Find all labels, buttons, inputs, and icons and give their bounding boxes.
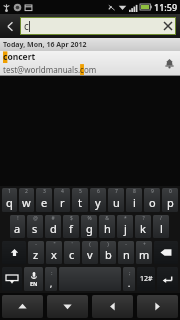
button[interactable]: Shift — [2, 241, 26, 264]
button[interactable]: " — [46, 241, 62, 264]
button[interactable]: Right — [137, 295, 178, 318]
button[interactable]: Down — [47, 295, 88, 318]
button[interactable]: 12# — [137, 267, 155, 291]
button[interactable]: Keyboard — [2, 267, 22, 291]
staticText: a — [14, 221, 21, 236]
button[interactable]: Enter — [157, 267, 178, 291]
staticText: . — [128, 278, 131, 289]
button[interactable]: 5 — [72, 188, 88, 212]
button[interactable]: ! — [10, 215, 25, 238]
button[interactable]: @ — [27, 215, 43, 238]
staticText: c — [24, 19, 29, 33]
staticText: t — [78, 195, 82, 210]
staticText: w — [22, 195, 31, 210]
staticText: 7 — [115, 188, 118, 195]
button[interactable]: Voice input — [24, 267, 43, 291]
staticText: " — [53, 241, 56, 248]
staticText: s — [32, 221, 38, 236]
button[interactable]: 7 — [108, 188, 124, 212]
button[interactable]: ' — [64, 241, 80, 264]
staticText: h — [104, 221, 111, 236]
button[interactable]: + — [136, 241, 152, 264]
staticText: e — [41, 195, 48, 210]
button[interactable]: 4 — [54, 188, 70, 212]
staticText: - — [125, 241, 127, 248]
button[interactable]: % — [81, 215, 97, 238]
staticText: $ — [70, 215, 73, 222]
staticText: 9 — [151, 188, 154, 195]
staticText: j — [124, 221, 127, 236]
staticText: ( — [89, 241, 91, 248]
staticText: m — [139, 247, 150, 262]
staticText: n — [123, 247, 130, 262]
button[interactable]: 8 — [126, 188, 142, 212]
staticText: 12# — [140, 274, 153, 284]
button[interactable]: ? — [135, 215, 151, 238]
button[interactable]: $ — [63, 215, 79, 238]
staticText: 8 — [133, 188, 136, 195]
staticText: 1 — [8, 188, 11, 195]
staticText: 6 — [97, 188, 100, 195]
button[interactable]: 1 — [2, 188, 17, 212]
staticText: - — [35, 241, 37, 248]
staticText: ' — [71, 241, 73, 248]
staticText: q — [6, 195, 13, 210]
staticText: * — [124, 215, 127, 222]
button[interactable]: 0 — [162, 188, 178, 212]
staticText: Today, Mon, 16 Apr 2012 — [3, 40, 87, 50]
button[interactable]: concert — [0, 51, 180, 75]
staticText: g — [86, 221, 93, 236]
button[interactable]: 3 — [36, 188, 52, 212]
button[interactable]: - — [28, 241, 44, 264]
button[interactable]: - — [118, 241, 134, 264]
button[interactable]: / — [153, 215, 169, 238]
button[interactable]: Comma — [45, 267, 57, 291]
staticText: r — [60, 195, 65, 210]
staticText: % — [87, 215, 92, 222]
button[interactable]: ( — [82, 241, 98, 264]
staticText: o — [149, 195, 156, 210]
button[interactable]: Backspace — [154, 241, 178, 264]
staticText: / — [160, 215, 162, 222]
button[interactable]: ) — [100, 241, 116, 264]
button[interactable]: & — [99, 215, 115, 238]
staticText: concert — [3, 51, 36, 63]
staticText: z — [33, 247, 39, 262]
staticText: EN — [30, 280, 38, 287]
button[interactable]: # — [45, 215, 61, 238]
staticText: x — [51, 247, 57, 262]
staticText: i — [133, 195, 136, 210]
staticText: : — [51, 269, 53, 277]
button[interactable]: Back — [0, 14, 20, 38]
staticText: u — [113, 195, 120, 210]
staticText: b — [105, 247, 112, 262]
staticText: & — [105, 215, 109, 222]
button[interactable]: Period — [123, 267, 135, 291]
button[interactable]: Reminder — [158, 51, 180, 75]
staticText: y — [95, 195, 101, 210]
button[interactable]: 9 — [144, 188, 160, 212]
button[interactable]: 6 — [90, 188, 106, 212]
staticText: v — [87, 247, 93, 262]
button[interactable]: Clear — [160, 17, 176, 35]
button[interactable] — [59, 267, 121, 291]
staticText: 11:59 — [154, 1, 178, 13]
staticText: ? — [142, 215, 145, 222]
staticText: l — [160, 221, 163, 236]
staticText: p — [167, 195, 174, 210]
staticText: f — [69, 221, 73, 236]
button[interactable]: Up — [2, 295, 43, 318]
staticText: # — [51, 215, 55, 222]
staticText: ; — [129, 269, 131, 277]
button[interactable]: c — [20, 17, 176, 35]
staticText: ! — [17, 215, 19, 222]
staticText: k — [140, 221, 146, 236]
button[interactable]: Left — [92, 295, 133, 318]
button[interactable]: 2 — [19, 188, 34, 212]
staticText: 5 — [79, 188, 82, 195]
staticText: 4 — [61, 188, 64, 195]
staticText: d — [50, 221, 57, 236]
button[interactable]: * — [117, 215, 133, 238]
staticText: c — [69, 247, 75, 262]
staticText: 2 — [25, 188, 28, 195]
